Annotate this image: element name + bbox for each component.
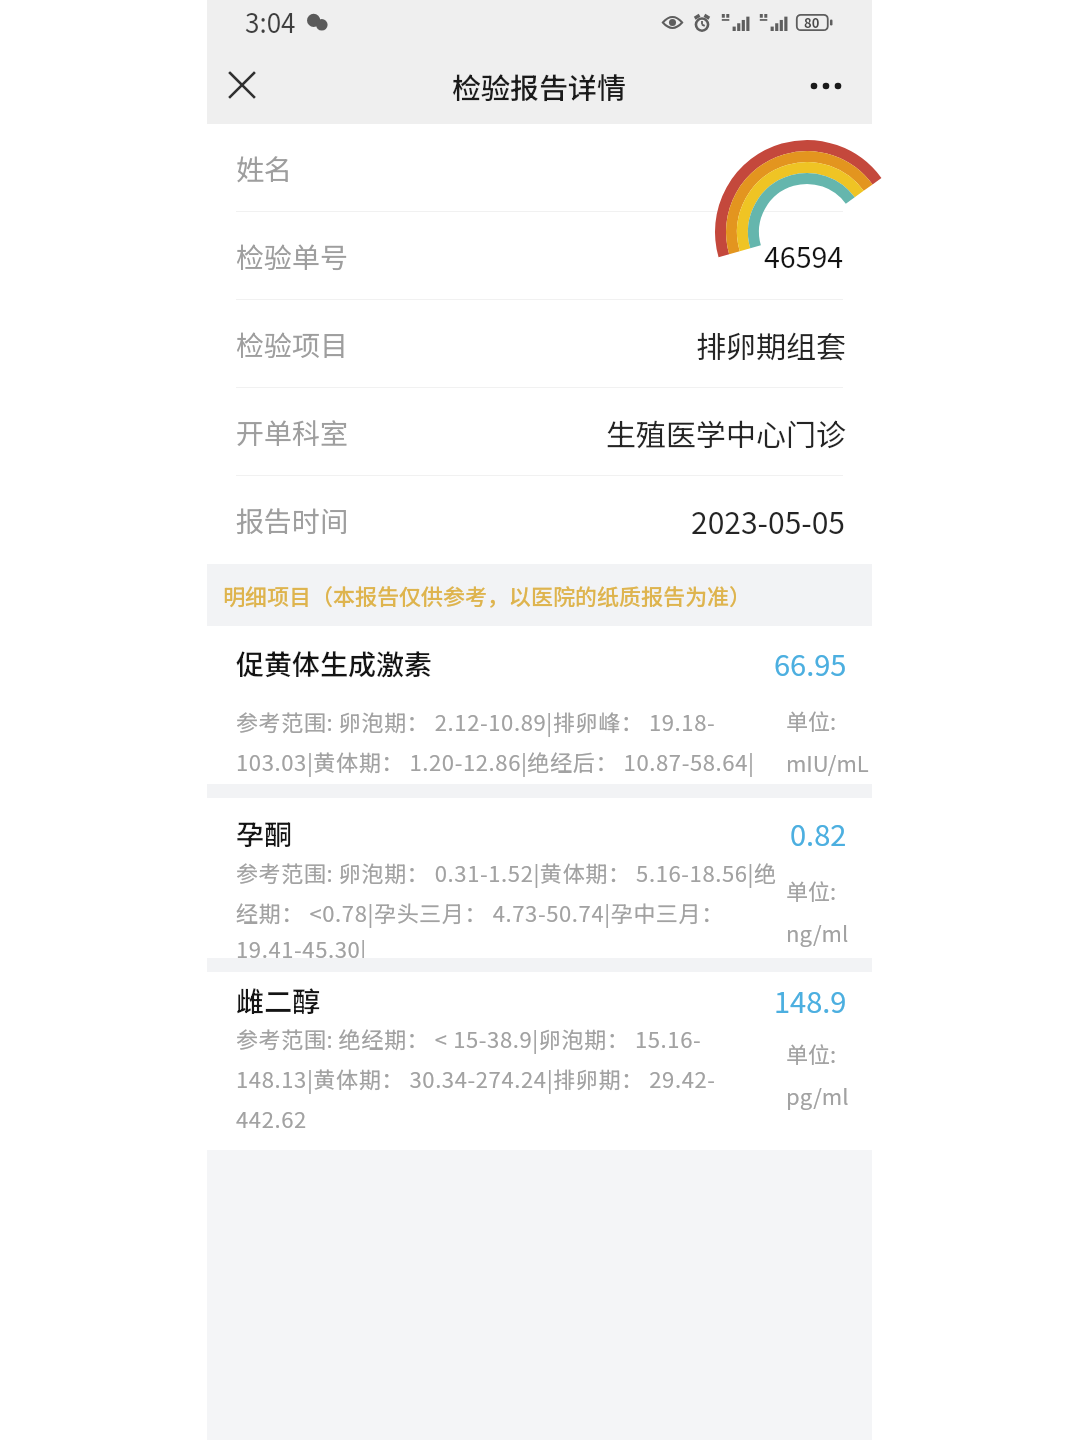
staticText: 148.13|黄体期： 30.34-274.24|排卵期： 29.42- [236,1062,716,1094]
staticText: 排卵期组套 [696,323,846,366]
staticText: 19.41-45.30| [236,932,367,958]
staticText: 单位: [786,704,837,736]
staticText: mIU/mL [786,746,869,778]
button[interactable]: More options [795,55,857,117]
staticText: 促黄体生成激素 [236,643,433,684]
button[interactable]: 姓名 [207,124,872,212]
staticText: 80 [804,13,820,32]
button[interactable]: 雌二醇 [207,972,872,1150]
staticText: 参考范围: 绝经期： < 15-38.9|卵泡期： 15.16- [236,1022,702,1054]
button[interactable]: 促黄体生成激素 [207,626,872,784]
button[interactable]: 孕酮 [207,798,872,958]
staticText: 2023-05-05 [691,499,846,542]
staticText: 经期： <0.78|孕头三月： 4.73-50.74|孕中三月： [236,896,724,928]
staticText: 442.62 [236,1102,307,1134]
button[interactable]: 报告时间 [207,476,872,564]
staticText: 3:04 [245,3,296,41]
staticText: 46594 [764,235,844,276]
staticText: 雌二醇 [236,980,321,1021]
button[interactable]: 检验单号 [207,212,872,300]
staticText: ng/ml [786,916,849,948]
staticText: 检验单号 [236,236,349,277]
staticText: 148.9 [774,979,847,1021]
staticText: 单位: [786,874,837,906]
staticText: 明细项目（本报告仅供参考，以医院的纸质报告为准） [223,579,752,611]
staticText: 参考范围: 卵泡期： 0.31-1.52|黄体期： 5.16-18.56|绝 [236,856,777,888]
staticText: 单位: [786,1037,837,1069]
staticText: 生殖医学中心门诊 [606,411,846,454]
staticText: 孕酮 [236,813,293,854]
staticText: 报告时间 [236,500,349,541]
staticText: 66.95 [774,642,847,684]
button[interactable]: 检验项目 [207,300,872,388]
staticText: 检验项目 [236,324,349,365]
button[interactable]: Close [211,54,273,116]
staticText: 检验报告详情 [452,65,627,107]
staticText: 103.03|黄体期： 1.20-12.86|绝经后： 10.87-58.64| [236,745,755,777]
staticText: pg/ml [786,1079,849,1111]
button[interactable]: 开单科室 [207,388,872,476]
staticText: 参考范围: 卵泡期： 2.12-10.89|排卵峰： 19.18- [236,705,716,737]
staticText: 开单科室 [236,412,349,453]
staticText: 姓名 [236,148,293,189]
staticText: 0.82 [790,812,847,854]
